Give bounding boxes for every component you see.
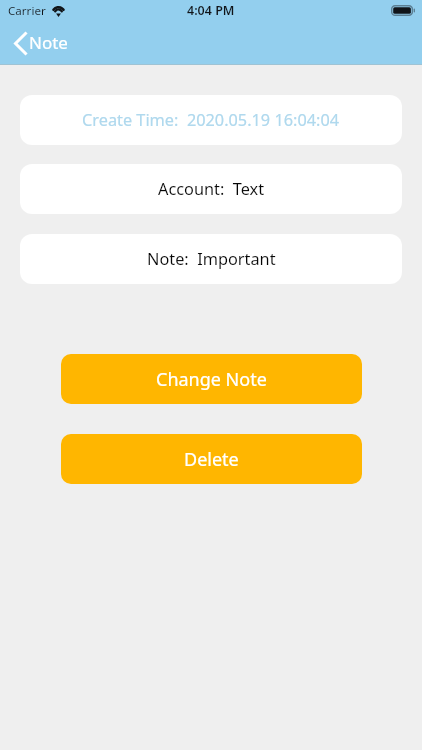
- staticText: Delete: [184, 447, 239, 472]
- staticText: Note: Important: [147, 248, 276, 270]
- button[interactable]: Change Note: [61, 354, 362, 404]
- staticText: Carrier: [8, 3, 46, 19]
- other: Battery full: [391, 5, 415, 16]
- staticText: Change Note: [156, 367, 267, 392]
- button[interactable]: Note: Important: [20, 234, 402, 284]
- staticText: Note: [29, 31, 68, 54]
- staticText: Create Time: 2020.05.19 16:04:04: [82, 109, 340, 131]
- button[interactable]: Back: [0, 21, 78, 65]
- other: Back: [14, 32, 27, 55]
- button[interactable]: Create Time: 2020.05.19 16:04:04: [20, 95, 402, 145]
- button[interactable]: Delete: [61, 434, 362, 484]
- staticText: 4:04 PM: [187, 2, 235, 19]
- staticText: Account: Text: [158, 178, 265, 200]
- button[interactable]: Account: Text: [20, 164, 402, 214]
